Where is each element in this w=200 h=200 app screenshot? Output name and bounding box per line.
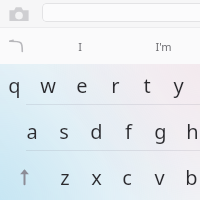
staticText: f (125, 118, 132, 145)
staticText: q (8, 72, 21, 99)
button[interactable]: Shift (8, 160, 40, 194)
staticText: t (143, 72, 151, 99)
staticText: v (154, 164, 165, 191)
staticText: w (40, 72, 56, 99)
staticText: s (59, 118, 69, 145)
staticText: z (60, 164, 70, 191)
staticText: I (78, 39, 82, 54)
button[interactable]: v (143, 160, 175, 194)
button[interactable]: Camera (6, 2, 32, 26)
button[interactable]: y (162, 68, 194, 102)
staticText: b (185, 164, 198, 191)
button[interactable]: q (0, 68, 30, 102)
button[interactable]: d (80, 114, 112, 148)
staticText: I'm (155, 39, 172, 54)
staticText: x (91, 164, 102, 191)
button[interactable]: r (99, 68, 131, 102)
staticText: c (122, 164, 132, 191)
staticText: d (90, 118, 103, 145)
staticText: r (111, 72, 120, 99)
button[interactable]: I (50, 30, 110, 62)
button[interactable]: t (131, 68, 163, 102)
button[interactable]: h (176, 114, 200, 148)
button[interactable]: e (66, 68, 98, 102)
button[interactable]: g (144, 114, 176, 148)
button[interactable]: z (49, 160, 81, 194)
button[interactable]: c (111, 160, 143, 194)
button[interactable]: w (32, 68, 64, 102)
staticText: e (76, 72, 88, 99)
staticText: a (26, 118, 38, 145)
button[interactable]: f (112, 114, 144, 148)
button[interactable]: Undo (2, 34, 30, 58)
button[interactable]: a (16, 114, 48, 148)
button[interactable] (42, 3, 200, 22)
button[interactable]: b (175, 160, 200, 194)
staticText: y (173, 72, 184, 99)
button[interactable]: I'm (133, 30, 193, 62)
staticText: g (154, 118, 167, 145)
button[interactable]: s (48, 114, 80, 148)
button[interactable]: x (80, 160, 112, 194)
staticText: h (186, 118, 199, 145)
